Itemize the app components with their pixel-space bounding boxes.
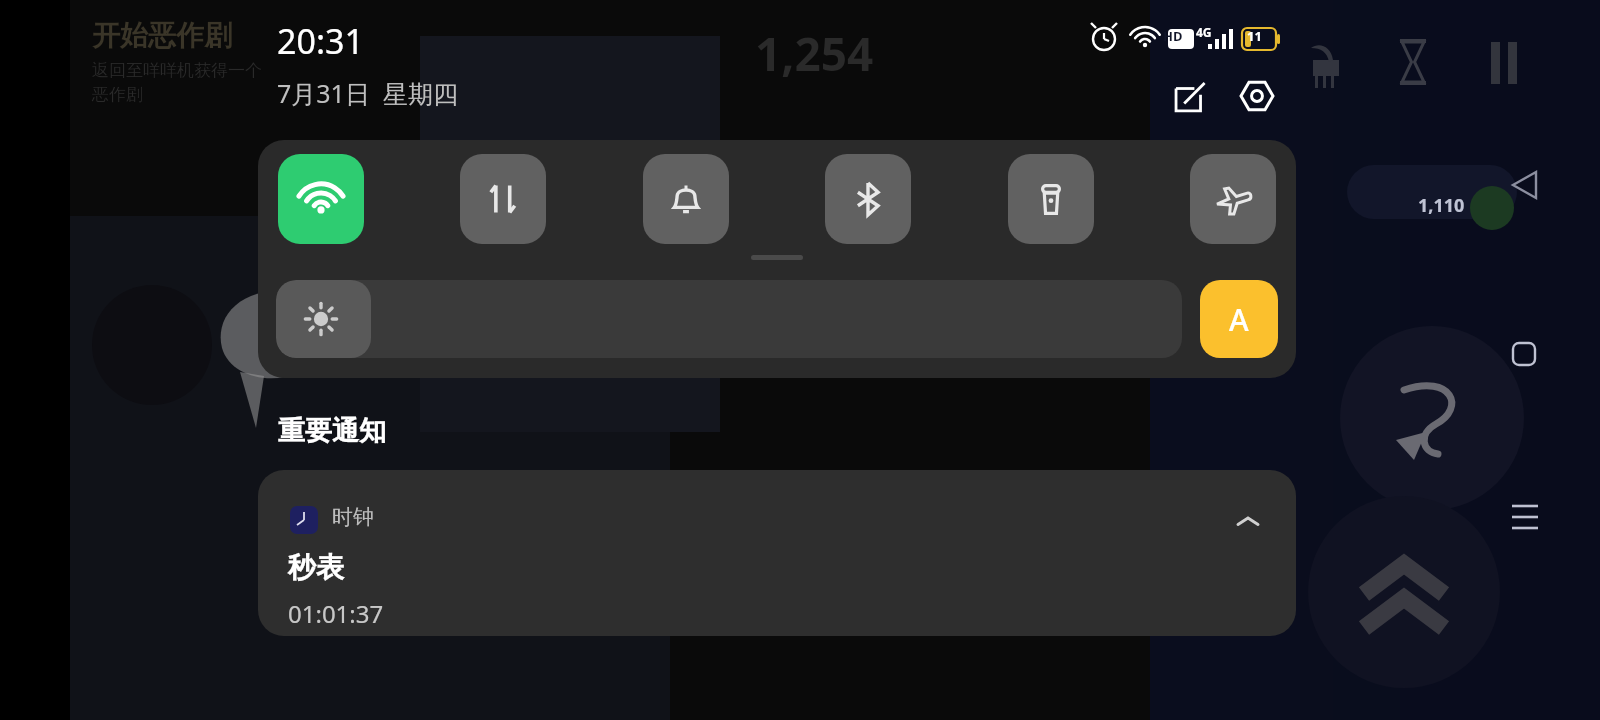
staticText: A xyxy=(1229,299,1249,340)
staticText: HD xyxy=(1163,27,1183,45)
staticText: 开始恶作剧 xyxy=(92,18,232,53)
button[interactable]: Flashlight xyxy=(1008,154,1094,244)
staticText: 1,110 xyxy=(1418,193,1465,218)
button[interactable]: Settings xyxy=(1234,73,1280,119)
staticText: 秒表 xyxy=(288,550,344,585)
button[interactable]: Recents xyxy=(1508,338,1540,370)
staticText: 20:31 xyxy=(277,18,364,64)
button[interactable]: Wi-Fi xyxy=(278,154,364,244)
button[interactable]: Ring mode xyxy=(643,154,729,244)
staticText: 11 xyxy=(1247,27,1262,45)
button[interactable]: A xyxy=(1200,280,1278,358)
button[interactable]: Brightness xyxy=(276,280,1182,358)
staticText: 时钟 xyxy=(332,504,374,530)
button[interactable]: Menu xyxy=(1506,500,1544,538)
button[interactable]: Airplane mode xyxy=(1190,154,1276,244)
button[interactable]: 时钟 xyxy=(258,470,1296,636)
staticText: 4G xyxy=(1196,24,1212,40)
button[interactable]: Bluetooth xyxy=(825,154,911,244)
staticText: 1,254 xyxy=(755,22,874,85)
button[interactable]: Collapse xyxy=(1226,500,1270,544)
staticText: 重要通知 xyxy=(278,414,386,448)
button[interactable]: Edit xyxy=(1168,73,1214,119)
staticText: 7月31日 星期四 xyxy=(277,76,458,110)
button[interactable]: Mobile data xyxy=(460,154,546,244)
staticText: 01:01:37 xyxy=(288,597,384,630)
staticText: 返回至咩咩机获得一个 恶作剧 xyxy=(92,60,262,105)
